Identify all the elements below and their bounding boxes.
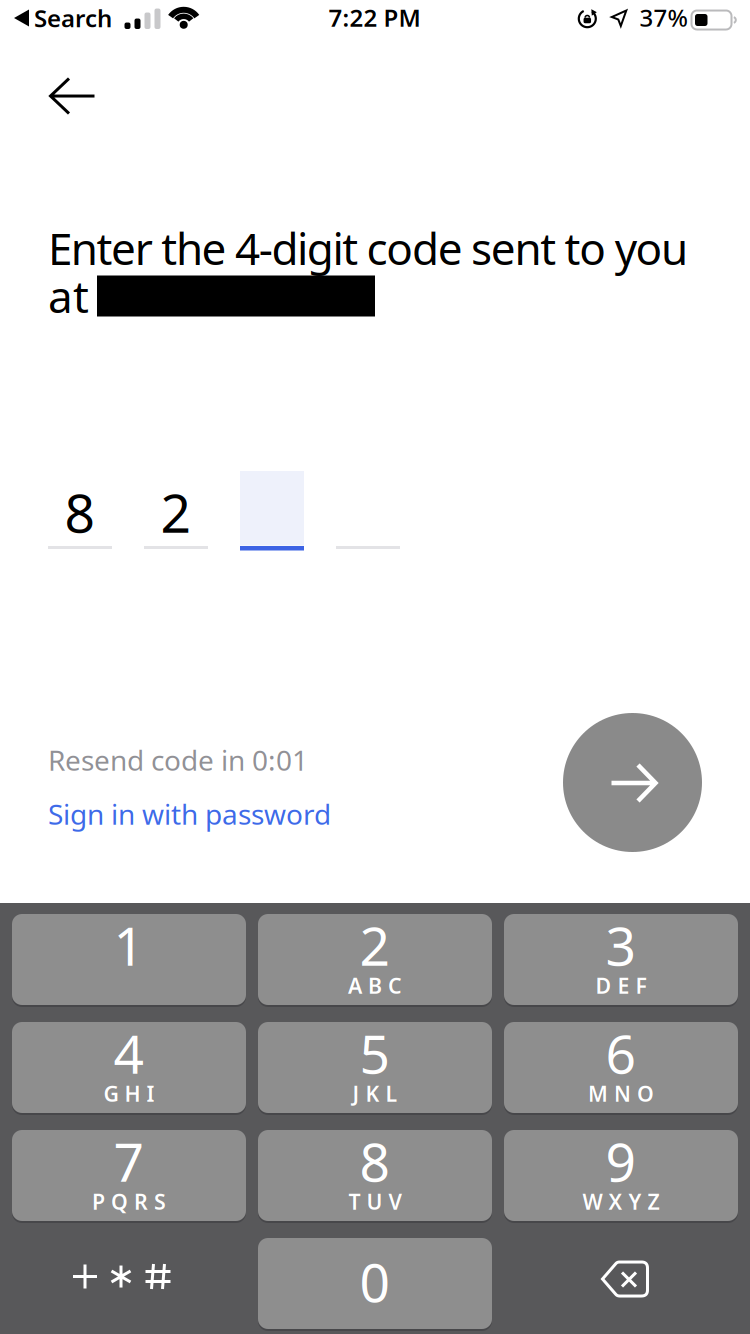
staticText: 7	[113, 1126, 144, 1196]
button[interactable]: 9	[504, 1130, 738, 1221]
staticText: at	[48, 267, 89, 325]
staticText: 8	[64, 477, 95, 547]
staticText: J K L	[352, 1079, 397, 1108]
staticText: 3	[605, 910, 636, 980]
button[interactable]: 1	[12, 914, 246, 1005]
button[interactable]: 6	[504, 1022, 738, 1113]
staticText: 2	[359, 910, 390, 980]
button[interactable]: Next	[563, 713, 702, 852]
staticText: 5	[359, 1018, 390, 1088]
button[interactable]: 2	[258, 914, 492, 1005]
staticText: 6	[605, 1018, 636, 1088]
button[interactable]: Back	[37, 66, 106, 126]
staticText: A B C	[348, 971, 402, 1000]
button[interactable]: Delete	[504, 1238, 738, 1329]
button[interactable]: Plus star hash	[12, 1238, 246, 1329]
staticText: Search	[34, 2, 112, 34]
button[interactable]: Back to Search	[14, 2, 112, 34]
staticText: 9	[605, 1126, 636, 1196]
staticText: T U V	[348, 1187, 401, 1216]
staticText: M N O	[588, 1079, 654, 1108]
staticText: Sign in with password	[48, 795, 331, 833]
button[interactable]: 0	[258, 1238, 492, 1329]
button[interactable]: 5	[258, 1022, 492, 1113]
staticText: 2	[160, 477, 191, 547]
staticText: Enter the 4-digit code sent to you	[48, 219, 688, 277]
staticText: 8	[359, 1126, 390, 1196]
staticText: 4	[113, 1018, 144, 1088]
staticText: 0	[359, 1246, 390, 1317]
staticText: G H I	[103, 1079, 154, 1108]
staticText: W X Y Z	[582, 1187, 659, 1216]
staticText: D E F	[595, 971, 646, 1000]
button[interactable]: 8	[258, 1130, 492, 1221]
staticText: Resend code in 0:01	[48, 741, 308, 779]
staticText: P Q R S	[92, 1187, 166, 1216]
staticText: 1	[113, 910, 144, 980]
button[interactable]: 7	[12, 1130, 246, 1221]
button[interactable]: 4	[12, 1022, 246, 1113]
button[interactable]: 3	[504, 914, 738, 1005]
staticText: 37%	[639, 2, 687, 33]
staticText: 7:22 PM	[328, 2, 420, 33]
button[interactable]: Sign in with password	[48, 795, 331, 833]
